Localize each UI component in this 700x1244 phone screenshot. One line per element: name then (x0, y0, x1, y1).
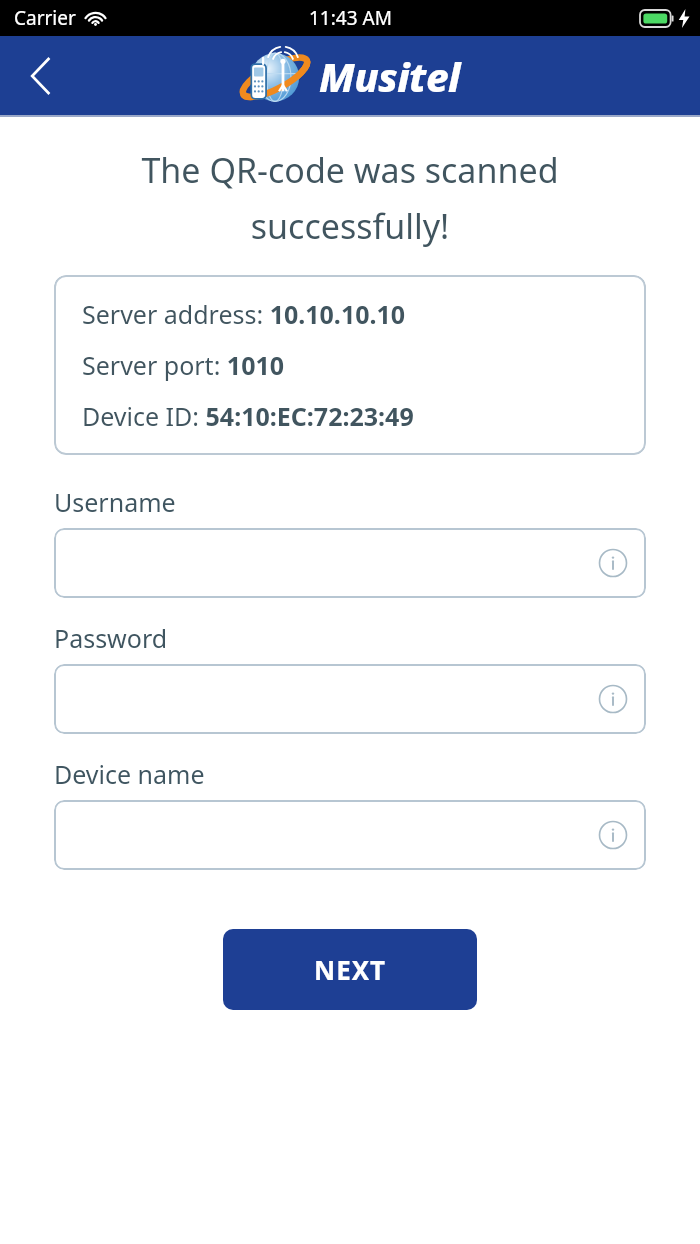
button[interactable]: Device name (54, 800, 646, 870)
staticText: Username (54, 485, 176, 519)
staticText: Device name (54, 757, 205, 791)
staticText: Carrier (14, 5, 76, 31)
staticText: Device ID: 54:10:EC:72:23:49 (82, 399, 414, 433)
staticText: Musitel (319, 49, 461, 103)
staticText: NEXT (314, 952, 387, 987)
button[interactable]: Device name info (598, 820, 628, 850)
button[interactable]: NEXT (223, 929, 477, 1010)
staticText: Password (54, 621, 168, 655)
staticText: The QR-code was scanned successfully! (54, 147, 646, 249)
button[interactable]: Back (14, 50, 66, 102)
staticText: Server address: 10.10.10.10 (82, 297, 406, 331)
button[interactable]: Password (54, 664, 646, 734)
staticText: 11:43 AM (309, 5, 392, 31)
staticText: Server port: 1010 (82, 348, 285, 382)
button[interactable]: Password info (598, 684, 628, 714)
button[interactable]: Username info (598, 548, 628, 578)
button[interactable]: Username (54, 528, 646, 598)
